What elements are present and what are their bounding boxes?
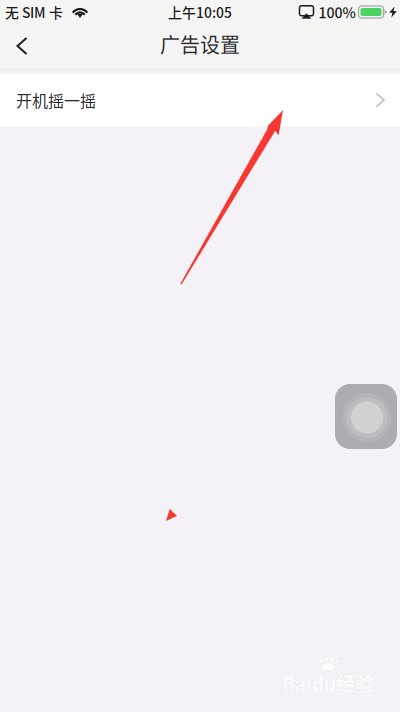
staticText: Baidu经验 <box>282 669 374 697</box>
button[interactable]: AssistiveTouch <box>335 384 397 449</box>
staticText: 开机摇一摇 <box>16 88 96 112</box>
staticText: 广告设置 <box>160 29 240 58</box>
staticText: Baidu经验 <box>281 668 373 696</box>
staticText: 上午10:05 <box>168 2 232 22</box>
staticText: 无 SIM 卡 <box>5 2 63 22</box>
staticText: Baidu经验 <box>283 669 375 697</box>
staticText: 100% <box>318 2 355 22</box>
button[interactable]: Back <box>0 24 44 68</box>
button[interactable]: 开机摇一摇 <box>0 74 400 127</box>
